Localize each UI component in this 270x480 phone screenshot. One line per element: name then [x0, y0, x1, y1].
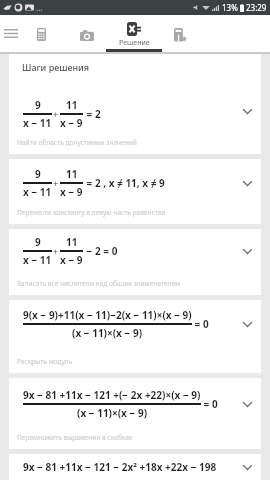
staticText: 11: [66, 98, 78, 112]
button[interactable]: Шаги решения: [9, 54, 261, 154]
staticText: 9: [35, 167, 41, 181]
staticText: 23:29: [246, 2, 267, 13]
staticText: x − 11: [23, 116, 52, 130]
button[interactable]: Expand step: [235, 455, 259, 479]
staticText: x − 9: [60, 116, 83, 130]
button[interactable]: 9x − 81 +11x − 121 − 2x² +18x +22x − 198: [9, 454, 261, 480]
button[interactable]: 9: [9, 159, 261, 224]
button[interactable]: 9: [9, 229, 261, 295]
staticText: Шаги решения: [22, 61, 90, 73]
staticText: 13%: [222, 2, 238, 13]
staticText: = 0: [201, 397, 218, 411]
staticText: Раскрыть модуль: [17, 357, 73, 366]
staticText: 9x − 81 +11x − 121 − 2x² +18x +22x − 198: [23, 460, 217, 474]
staticText: x − 11: [23, 185, 52, 199]
staticText: x − 11: [23, 253, 52, 267]
staticText: Найти область допустимых значений: [17, 138, 137, 147]
staticText: = 0: [192, 317, 209, 331]
button[interactable]: Expand step: [235, 171, 259, 195]
staticText: +: [53, 108, 59, 120]
button[interactable]: Expand step: [235, 392, 259, 416]
staticText: Записать все числители над общим знамена…: [17, 279, 181, 288]
button[interactable]: Expand step: [235, 239, 259, 263]
staticText: +: [53, 177, 59, 189]
staticText: ...: [36, 2, 43, 13]
button[interactable]: Menu: [0, 15, 22, 52]
staticText: Решение: [119, 38, 150, 48]
button[interactable]: Решение: [106, 15, 162, 52]
staticText: x − 9: [60, 185, 83, 199]
staticText: 11: [66, 167, 78, 181]
staticText: (x − 11)×(x − 9): [77, 406, 148, 420]
staticText: − 2 = 0: [84, 244, 118, 258]
button[interactable]: Calculator: [29, 16, 53, 53]
button[interactable]: Expand step: [235, 99, 259, 123]
staticText: = 2 , x ≠ 11, x ≠ 9: [84, 176, 165, 190]
button[interactable]: Expand step: [235, 312, 259, 336]
staticText: 11: [66, 235, 78, 249]
staticText: 9(x − 9)+11(x − 11)−2(x − 11)×(x − 9): [23, 308, 192, 322]
staticText: (x − 11)×(x − 9): [72, 326, 143, 340]
staticText: +: [53, 245, 59, 257]
staticText: = 2: [84, 107, 101, 121]
staticText: 9x − 81 +11x − 121 +(− 2x +22)×(x − 9): [23, 388, 201, 402]
staticText: 9: [35, 98, 41, 112]
button[interactable]: 9x − 81 +11x − 121 +(− 2x +22)×(x − 9): [9, 378, 261, 449]
button[interactable]: Bookmarks: [168, 16, 192, 53]
staticText: x − 9: [60, 253, 83, 267]
button[interactable]: 9(x − 9)+11(x − 11)−2(x − 11)×(x − 9): [9, 300, 261, 373]
staticText: Перенести константу в левую часть равенс…: [17, 208, 166, 217]
staticText: Перемножить выражения в скобках: [17, 433, 133, 442]
button[interactable]: Camera: [75, 17, 99, 54]
staticText: 9: [35, 235, 41, 249]
